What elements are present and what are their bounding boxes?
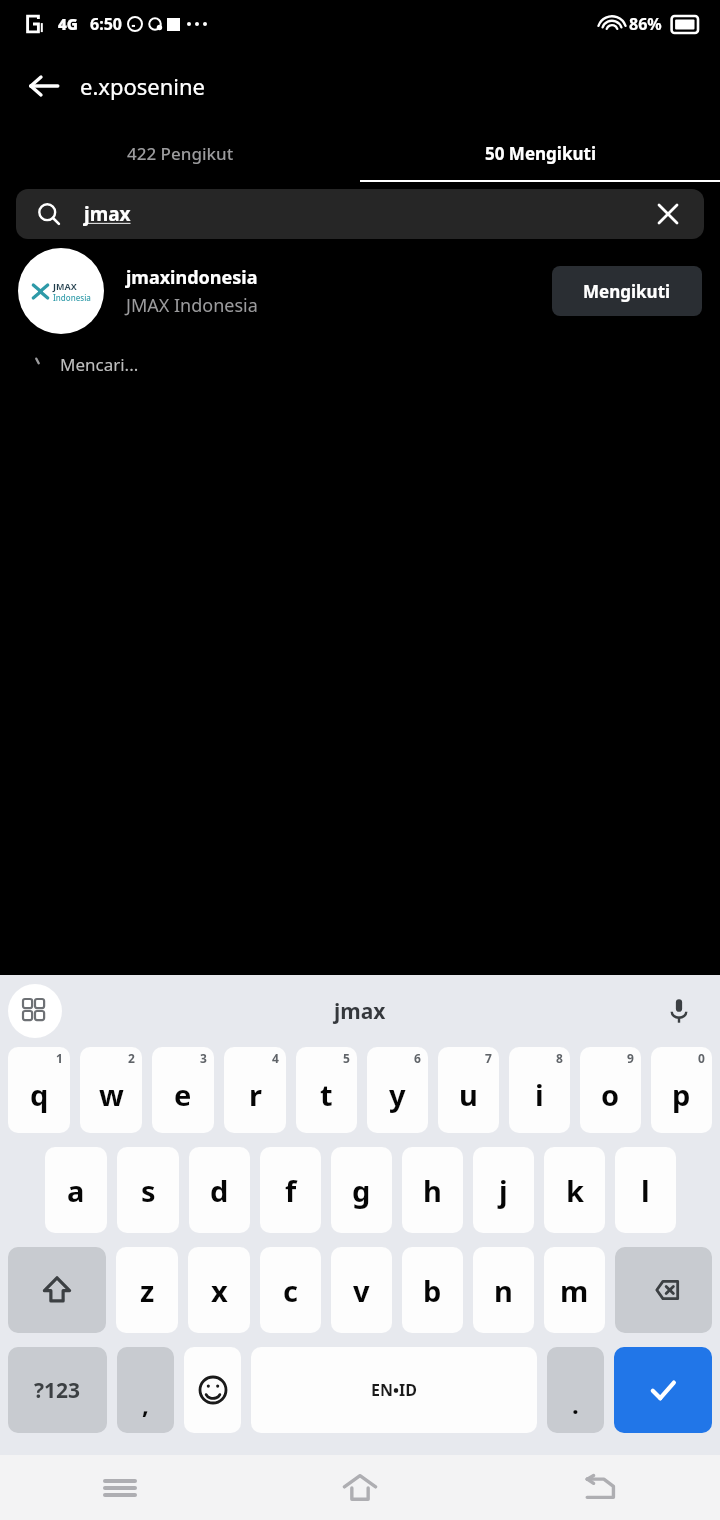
button[interactable]: 2 <box>80 1047 142 1133</box>
staticText: f <box>285 1171 297 1210</box>
staticText: 0 <box>698 1050 705 1066</box>
staticText: . <box>572 1388 579 1421</box>
staticText: 9 <box>627 1050 634 1066</box>
staticText: 6:50 <box>90 13 122 35</box>
button[interactable]: EN•ID <box>251 1347 537 1433</box>
button[interactable]: l <box>615 1147 676 1233</box>
staticText: 5 <box>343 1050 350 1066</box>
button[interactable]: Mengikuti <box>552 266 702 316</box>
staticText: 8 <box>556 1050 563 1066</box>
staticText: i <box>535 1075 544 1114</box>
button[interactable]: jmax <box>16 189 704 239</box>
button[interactable]: 8 <box>509 1047 570 1133</box>
staticText: Indonesia <box>53 292 91 303</box>
button[interactable]: Backspace <box>615 1247 712 1333</box>
button[interactable]: JMAX <box>0 246 720 336</box>
staticText: 7 <box>485 1050 492 1066</box>
button[interactable]: h <box>402 1147 463 1233</box>
button[interactable]: n <box>473 1247 534 1333</box>
button[interactable]: 6 <box>367 1047 428 1133</box>
staticText: JMAX Indonesia <box>126 293 258 318</box>
button[interactable]: . <box>547 1347 604 1433</box>
staticText: Mencari... <box>60 353 139 376</box>
staticText: jmax <box>334 997 386 1026</box>
button[interactable]: j <box>473 1147 534 1233</box>
button[interactable]: Back <box>18 60 70 112</box>
button[interactable]: Home <box>240 1455 480 1520</box>
staticText: z <box>140 1271 155 1310</box>
staticText: a <box>67 1171 85 1210</box>
staticText: p <box>672 1075 691 1114</box>
staticText: v <box>353 1271 370 1310</box>
button[interactable]: ?123 <box>8 1347 107 1433</box>
button[interactable]: 0 <box>651 1047 712 1133</box>
button[interactable]: 50 Mengikuti <box>360 124 720 182</box>
staticText: jmax <box>84 201 131 227</box>
staticText: x <box>211 1271 228 1310</box>
staticText: s <box>141 1171 156 1210</box>
button[interactable]: 422 Pengikut <box>0 124 360 182</box>
button[interactable]: c <box>260 1247 321 1333</box>
button[interactable]: k <box>544 1147 605 1233</box>
staticText: u <box>459 1075 478 1114</box>
staticText: , <box>142 1388 149 1421</box>
staticText: b <box>423 1271 442 1310</box>
button[interactable]: Recents <box>0 1455 240 1520</box>
staticText: d <box>210 1171 229 1210</box>
staticText: JMAX <box>53 280 77 292</box>
button[interactable]: s <box>117 1147 179 1233</box>
staticText: h <box>423 1171 442 1210</box>
staticText: Mengikuti <box>583 280 671 303</box>
staticText: j <box>499 1171 508 1210</box>
staticText: t <box>320 1075 333 1114</box>
staticText: e.xposenine <box>80 71 206 101</box>
button[interactable]: Voice input <box>656 988 702 1034</box>
button[interactable]: Enter <box>614 1347 712 1433</box>
staticText: 3 <box>200 1050 207 1066</box>
staticText: 1 <box>56 1050 63 1066</box>
staticText: m <box>560 1271 589 1310</box>
staticText: 6 <box>414 1050 421 1066</box>
staticText: n <box>494 1271 513 1310</box>
button[interactable]: b <box>402 1247 463 1333</box>
staticText: 2 <box>128 1050 135 1066</box>
staticText: 4G <box>58 14 78 34</box>
staticText: l <box>641 1171 650 1210</box>
button[interactable]: Emoji <box>184 1347 241 1433</box>
button[interactable]: z <box>116 1247 178 1333</box>
button[interactable]: m <box>544 1247 605 1333</box>
button[interactable]: x <box>188 1247 250 1333</box>
button[interactable]: 5 <box>296 1047 357 1133</box>
staticText: r <box>249 1075 262 1114</box>
button[interactable]: Shift <box>8 1247 106 1333</box>
button[interactable]: 3 <box>152 1047 214 1133</box>
staticText: EN•ID <box>371 1379 417 1401</box>
staticText: 86% <box>629 13 662 35</box>
button[interactable]: Clear <box>648 194 688 234</box>
button[interactable]: Back <box>480 1455 720 1520</box>
staticText: 422 Pengikut <box>127 142 234 165</box>
button[interactable]: Keyboard options <box>8 984 62 1038</box>
button[interactable]: a <box>45 1147 107 1233</box>
button[interactable]: g <box>331 1147 392 1233</box>
staticText: 4 <box>272 1050 279 1066</box>
button[interactable]: f <box>260 1147 321 1233</box>
button[interactable]: 9 <box>580 1047 641 1133</box>
button[interactable]: 1 <box>8 1047 70 1133</box>
button[interactable]: , <box>117 1347 174 1433</box>
staticText: g <box>352 1171 371 1210</box>
staticText: y <box>389 1075 406 1114</box>
button[interactable]: v <box>331 1247 392 1333</box>
staticText: ?123 <box>34 1376 81 1405</box>
staticText: c <box>283 1271 298 1310</box>
button[interactable]: 7 <box>438 1047 499 1133</box>
staticText: w <box>99 1075 124 1114</box>
button[interactable]: 4 <box>224 1047 286 1133</box>
staticText: q <box>30 1075 49 1114</box>
button[interactable]: d <box>189 1147 250 1233</box>
staticText: o <box>601 1075 620 1114</box>
staticText: e <box>174 1075 192 1114</box>
staticText: 50 Mengikuti <box>485 142 596 165</box>
staticText: jmaxindonesia <box>126 265 258 290</box>
staticText: k <box>566 1171 584 1210</box>
